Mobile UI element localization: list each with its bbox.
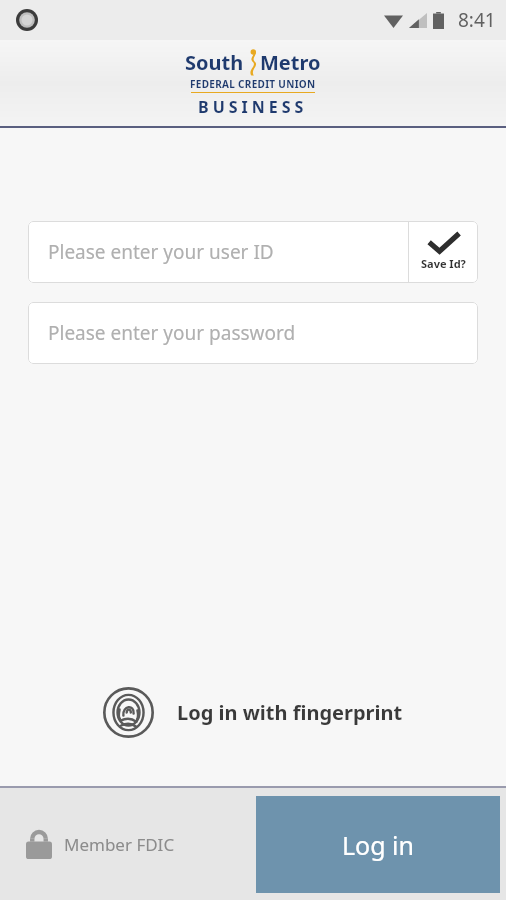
button[interactable]: Log in with fingerprint (95, 681, 411, 744)
staticText: Metro (260, 49, 321, 76)
staticText: Please enter your password (48, 320, 296, 346)
staticText: FEDERAL CREDIT UNION (190, 77, 316, 91)
staticText: Log in (342, 828, 415, 862)
staticText: Log in with fingerprint (177, 699, 403, 726)
staticText: Save Id? (421, 256, 466, 271)
staticText: Member FDIC (64, 833, 175, 856)
button[interactable]: Please enter your password (28, 302, 478, 364)
staticText: Please enter your user ID (48, 239, 274, 265)
button[interactable]: Log in (256, 796, 500, 893)
button[interactable]: Save Id (409, 221, 478, 283)
staticText: South (185, 49, 244, 76)
staticText: BUSINESS (198, 96, 308, 118)
staticText: 8:41 (458, 7, 496, 33)
button[interactable]: Please enter your user ID (28, 221, 408, 283)
button[interactable]: Member FDIC (22, 823, 179, 865)
